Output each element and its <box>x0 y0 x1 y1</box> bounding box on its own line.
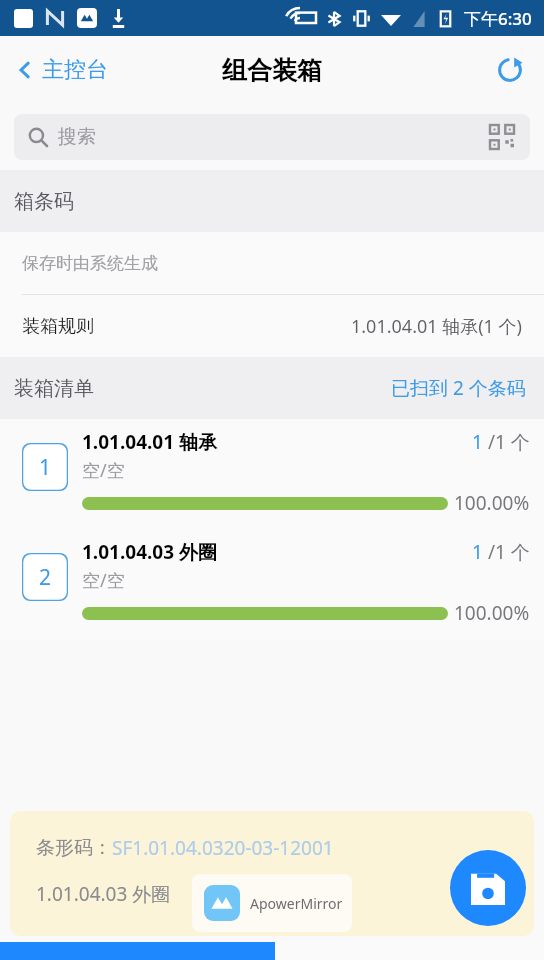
staticText: 1.01.04.01 轴承 <box>82 429 218 455</box>
staticText: 组合装箱 <box>222 55 322 86</box>
staticText: 主控台 <box>42 56 108 84</box>
staticText: 条形码： <box>36 836 112 860</box>
staticText: 100.00% <box>454 600 530 626</box>
button[interactable]: Refresh <box>488 48 532 92</box>
button[interactable]: 装箱规则 <box>0 295 544 357</box>
staticText: 保存时由系统生成 <box>22 253 158 274</box>
staticText: 空/空 <box>82 458 125 483</box>
button[interactable]: Scan QR code <box>482 117 522 157</box>
staticText: 1.01.04.03 外圈 <box>82 539 218 565</box>
button[interactable]: Save <box>450 850 526 926</box>
staticText: 箱条码 <box>14 189 74 214</box>
staticText: /1 个 <box>483 539 530 565</box>
staticText: 1 <box>472 539 483 565</box>
staticText: 1 <box>472 429 483 455</box>
button[interactable]: 1 <box>0 419 544 529</box>
button[interactable]: 条形码： <box>10 811 534 936</box>
staticText: 1 <box>39 453 52 482</box>
button[interactable]: 主控台 <box>10 50 114 90</box>
staticText: 空/空 <box>82 568 125 593</box>
staticText: 装箱清单 <box>14 376 94 401</box>
staticText: 100.00% <box>454 490 530 516</box>
button[interactable]: 已扫到 2 个条码 <box>387 371 530 405</box>
staticText: 1.01.04.03 外圈 <box>36 881 171 907</box>
button[interactable]: 2 <box>0 529 544 639</box>
staticText: 1.01.04.01 轴承(1 个) <box>351 314 522 339</box>
staticText: SF1.01.04.0320-03-12001 <box>112 835 334 861</box>
staticText: /1 个 <box>483 429 530 455</box>
button[interactable]: 搜索 <box>14 114 530 160</box>
staticText: ApowerMirror <box>250 894 343 913</box>
staticText: 下午6:30 <box>464 7 532 30</box>
staticText: 2 <box>39 563 52 592</box>
staticText: 搜索 <box>58 125 96 149</box>
staticText: 已扫到 2 个条码 <box>391 375 526 401</box>
staticText: 装箱规则 <box>22 315 94 338</box>
